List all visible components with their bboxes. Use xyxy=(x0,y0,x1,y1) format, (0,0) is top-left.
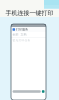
staticText: 全部 xyxy=(12,33,18,36)
staticText: 暂无打印任务 xyxy=(12,39,30,42)
staticText: 打印服务 xyxy=(16,27,28,31)
staticText: 手机连接一键打印 xyxy=(5,9,53,17)
staticText: 文档 xyxy=(20,33,26,36)
